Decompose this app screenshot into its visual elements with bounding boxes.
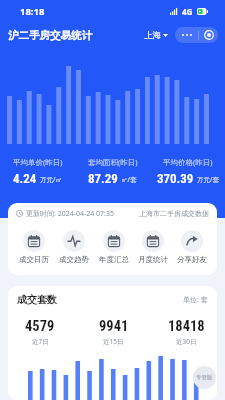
staticText: 平均单价(昨日)	[13, 157, 63, 167]
button[interactable]: 分享好友	[172, 230, 211, 264]
staticText: 平均价格(昨日)	[163, 157, 213, 167]
button[interactable]: 年度汇总	[94, 230, 133, 264]
staticText: 成交趋势	[59, 255, 89, 264]
staticText: 近30日	[176, 337, 197, 346]
staticText: 成交日历	[19, 255, 49, 264]
staticText: 近7日	[32, 337, 49, 346]
staticText: 87.29	[88, 171, 118, 186]
button[interactable]: 月度统计	[133, 230, 172, 264]
staticText: 4579	[25, 318, 55, 335]
staticText: ㎡/套	[121, 175, 137, 184]
staticText: 370.39	[157, 171, 194, 186]
button[interactable]: 成交日历	[14, 230, 54, 264]
staticText: 4.24	[13, 171, 37, 186]
button[interactable]: 上海	[142, 28, 170, 43]
staticText: 18418	[168, 318, 205, 335]
staticText: 9941	[99, 318, 129, 335]
button[interactable]: 成交趋势	[54, 230, 94, 264]
staticText: 上海	[144, 30, 161, 41]
staticText: 4G	[182, 6, 193, 17]
staticText: 分享好友	[177, 255, 207, 264]
staticText: 上海市二手房成交数据	[139, 209, 209, 218]
staticText: 沪二手房交易统计	[8, 29, 92, 42]
staticText: 成交套数	[17, 293, 57, 306]
staticText: 单位: 套	[183, 295, 208, 305]
staticText: 近15日	[103, 337, 124, 346]
staticText: 年度汇总	[99, 255, 129, 264]
staticText: 更新时间: 2024-04-24 07:35	[26, 209, 114, 219]
staticText: 万元/㎡	[40, 175, 62, 184]
button[interactable]: Close	[199, 27, 218, 43]
staticText: 18:18	[20, 5, 45, 18]
staticText: 套均面积(昨日)	[88, 157, 138, 167]
button[interactable]: More options	[175, 27, 198, 43]
staticText: 月度统计	[138, 255, 168, 264]
staticText: 万元/套	[197, 175, 219, 184]
staticText: 专登版	[196, 374, 213, 381]
